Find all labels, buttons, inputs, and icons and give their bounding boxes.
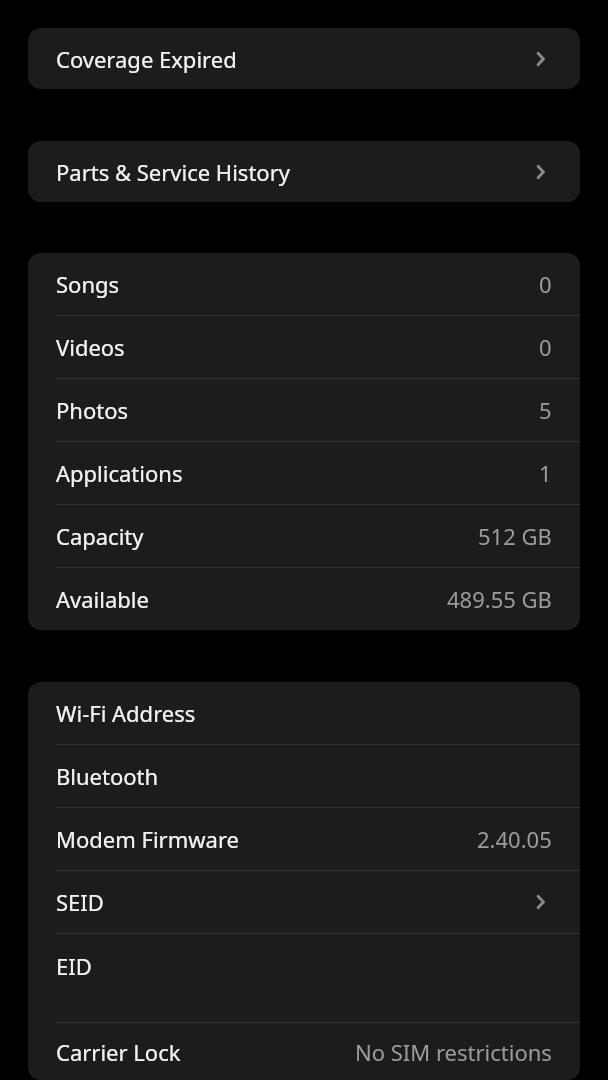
staticText: Available (56, 584, 149, 614)
button[interactable]: Wi-Fi Address (28, 682, 580, 744)
button[interactable]: Carrier Lock (28, 1023, 580, 1080)
staticText: Coverage Expired (56, 44, 237, 74)
button[interactable]: Available (28, 568, 580, 630)
button[interactable]: SEID (28, 871, 580, 933)
staticText: 1 (539, 458, 552, 488)
staticText: SEID (56, 887, 104, 917)
staticText: Parts & Service History (56, 157, 290, 187)
button[interactable]: Coverage Expired (28, 28, 580, 89)
staticText: Capacity (56, 521, 144, 551)
staticText: 512 GB (478, 521, 552, 551)
staticText: Applications (56, 458, 183, 488)
staticText: 489.55 GB (447, 584, 552, 614)
staticText: Bluetooth (56, 761, 159, 791)
staticText: Songs (56, 269, 120, 299)
button[interactable]: Songs (28, 253, 580, 315)
button[interactable]: Applications (28, 442, 580, 504)
staticText: No SIM restrictions (355, 1037, 552, 1067)
staticText: EID (56, 951, 92, 981)
staticText: Carrier Lock (56, 1037, 181, 1067)
staticText: 5 (539, 395, 552, 425)
button[interactable]: Videos (28, 316, 580, 378)
button[interactable]: Photos (28, 379, 580, 441)
other: Open (528, 160, 552, 184)
button[interactable]: Bluetooth (28, 745, 580, 807)
staticText: Videos (56, 332, 125, 362)
button[interactable]: Capacity (28, 505, 580, 567)
other: Open (528, 890, 552, 914)
staticText: Photos (56, 395, 129, 425)
staticText: Wi-Fi Address (56, 698, 196, 728)
staticText: 2.40.05 (477, 824, 552, 854)
staticText: Modem Firmware (56, 824, 239, 854)
button[interactable]: EID (28, 934, 580, 1022)
staticText: 0 (539, 269, 552, 299)
other: Open (528, 47, 552, 71)
button[interactable]: Parts & Service History (28, 141, 580, 202)
staticText: 0 (539, 332, 552, 362)
button[interactable]: Modem Firmware (28, 808, 580, 870)
